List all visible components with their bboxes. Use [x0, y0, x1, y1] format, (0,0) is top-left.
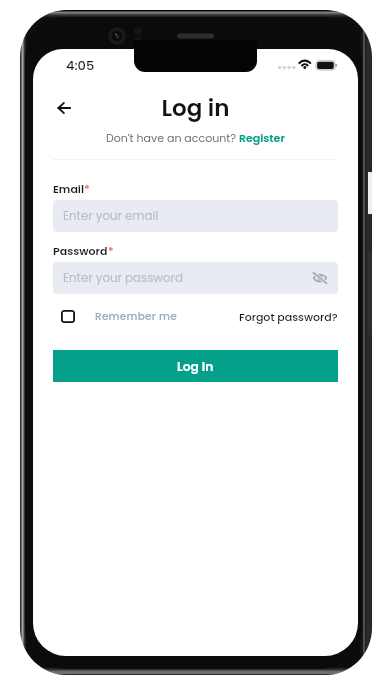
- staticText: Log In: [177, 358, 214, 375]
- button[interactable]: Enter your email: [53, 200, 338, 232]
- staticText: Remember me: [95, 309, 177, 324]
- staticText: Enter your password: [63, 270, 183, 287]
- button[interactable]: Show password: [307, 265, 333, 291]
- staticText: *: [84, 181, 90, 196]
- staticText: Forgot password?: [239, 309, 338, 324]
- staticText: Password: [53, 243, 108, 258]
- staticText: Email: [53, 181, 84, 196]
- button[interactable]: Remember me: [61, 303, 177, 329]
- button[interactable]: Log In: [53, 350, 338, 382]
- staticText: Register: [239, 130, 285, 145]
- button[interactable]: Enter your password: [53, 262, 338, 294]
- button[interactable]: Back: [47, 91, 81, 125]
- staticText: Log in: [33, 92, 358, 124]
- staticText: Don't have an account?: [106, 130, 239, 145]
- button[interactable]: Forgot password?: [228, 303, 338, 329]
- staticText: Enter your email: [63, 208, 159, 225]
- button[interactable]: Register: [239, 130, 285, 145]
- staticText: 4:05: [66, 56, 95, 74]
- staticText: *: [108, 243, 114, 258]
